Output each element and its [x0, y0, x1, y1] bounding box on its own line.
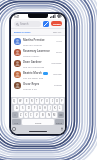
staticText: Q	[13, 99, 16, 103]
staticText: H	[44, 106, 46, 110]
staticText: 10:24	[56, 40, 62, 43]
button[interactable]: A	[14, 105, 19, 111]
button[interactable]: B	[40, 112, 45, 118]
staticText: space	[35, 121, 42, 124]
staticText: ⌫	[59, 114, 63, 117]
button[interactable]: Z	[19, 112, 23, 118]
button[interactable]: P	[60, 98, 64, 104]
staticText: Oscar Reyes	[23, 82, 40, 86]
button[interactable]: K	[53, 105, 57, 111]
button[interactable]: O	[55, 98, 59, 104]
staticText: Search	[20, 22, 29, 26]
staticText: Cancel	[53, 22, 61, 25]
staticText: K	[54, 106, 56, 110]
button[interactable]: S	[20, 105, 25, 111]
button[interactable]: F	[32, 105, 37, 111]
button[interactable]: Dean Gardner	[11, 58, 65, 69]
staticText: E	[26, 99, 28, 103]
staticText: I	[52, 99, 53, 103]
staticText: J	[50, 106, 51, 110]
staticText: N	[48, 113, 50, 117]
staticText: Y	[41, 99, 43, 103]
button[interactable]: Y	[40, 98, 44, 104]
button[interactable]: R	[30, 98, 34, 104]
button[interactable]: I	[50, 98, 54, 104]
staticText: ⇧	[14, 114, 17, 117]
button[interactable]: Shift	[12, 112, 18, 118]
staticText: Sunday	[54, 84, 62, 87]
staticText: T	[36, 99, 38, 103]
staticText: Typing a reply…	[23, 54, 41, 57]
staticText: X	[25, 113, 27, 117]
staticText: See you tomorrow!	[23, 65, 45, 68]
staticText: C	[30, 113, 32, 117]
staticText: 123	[14, 121, 19, 124]
staticText: L	[59, 106, 61, 110]
button[interactable]: W	[18, 98, 23, 104]
staticText: F	[34, 106, 36, 110]
staticText: Call me when free	[23, 76, 44, 79]
staticText: Monday	[53, 73, 62, 76]
staticText: Done	[56, 121, 63, 124]
staticText: O	[56, 99, 59, 103]
staticText: R	[31, 99, 33, 103]
button[interactable]: Rosemary Lawrence	[11, 47, 65, 58]
staticText: Martha Prentice	[23, 38, 45, 42]
button[interactable]: D	[26, 105, 31, 111]
staticText: S	[22, 106, 24, 110]
staticText: Sent you a photo	[23, 43, 43, 46]
staticText: Yesterday	[51, 62, 62, 65]
button[interactable]: U	[45, 98, 49, 104]
button[interactable]: E	[24, 98, 29, 104]
staticText: Z	[20, 113, 22, 117]
button[interactable]: space	[22, 119, 54, 125]
staticText: SEE ALL	[53, 31, 62, 34]
button[interactable]: H	[43, 105, 47, 111]
button[interactable]: RECENT CHATS	[14, 31, 31, 34]
button[interactable]: Oscar Reyes	[11, 80, 65, 91]
button[interactable]: Done	[55, 119, 64, 125]
button[interactable]: M	[52, 112, 57, 118]
staticText: G	[39, 106, 41, 110]
button[interactable]: T	[35, 98, 39, 104]
button[interactable]: J	[48, 105, 52, 111]
staticText: RECENT CHATS	[14, 31, 31, 34]
staticText: Dean Gardner	[23, 60, 42, 64]
button[interactable]: SEE ALL	[53, 31, 62, 34]
staticText: 09:02	[56, 51, 62, 54]
staticText: Thanks a lot	[23, 87, 37, 90]
button[interactable]: 123	[12, 119, 21, 125]
staticText: U	[46, 99, 48, 103]
staticText: W	[19, 99, 22, 103]
staticText: D	[28, 106, 30, 110]
staticText: Beatrix Marsh	[23, 71, 42, 75]
button[interactable]: N	[46, 112, 51, 118]
button[interactable]: C	[29, 112, 33, 118]
staticText: B	[42, 113, 44, 117]
staticText: A	[16, 106, 18, 110]
button[interactable]: Search	[14, 21, 41, 27]
button[interactable]: L	[58, 105, 62, 111]
button[interactable]: Dictate	[60, 127, 64, 131]
staticText: 9:41	[14, 15, 20, 19]
button[interactable]: V	[34, 112, 39, 118]
staticText: M	[53, 113, 56, 117]
staticText: V	[36, 113, 38, 117]
button[interactable]: Emoji	[12, 127, 16, 131]
button[interactable]: Backspace	[58, 112, 64, 118]
button[interactable]: Beatrix Marsh	[11, 69, 65, 80]
staticText: P	[61, 99, 63, 103]
button[interactable]: Compose message	[43, 21, 49, 27]
button[interactable]: Q	[12, 98, 17, 104]
button[interactable]: Cancel	[51, 21, 62, 26]
button[interactable]: X	[24, 112, 28, 118]
staticText: Rosemary Lawrence	[23, 49, 50, 53]
button[interactable]: G	[38, 105, 42, 111]
button[interactable]: Martha Prentice	[11, 36, 65, 47]
